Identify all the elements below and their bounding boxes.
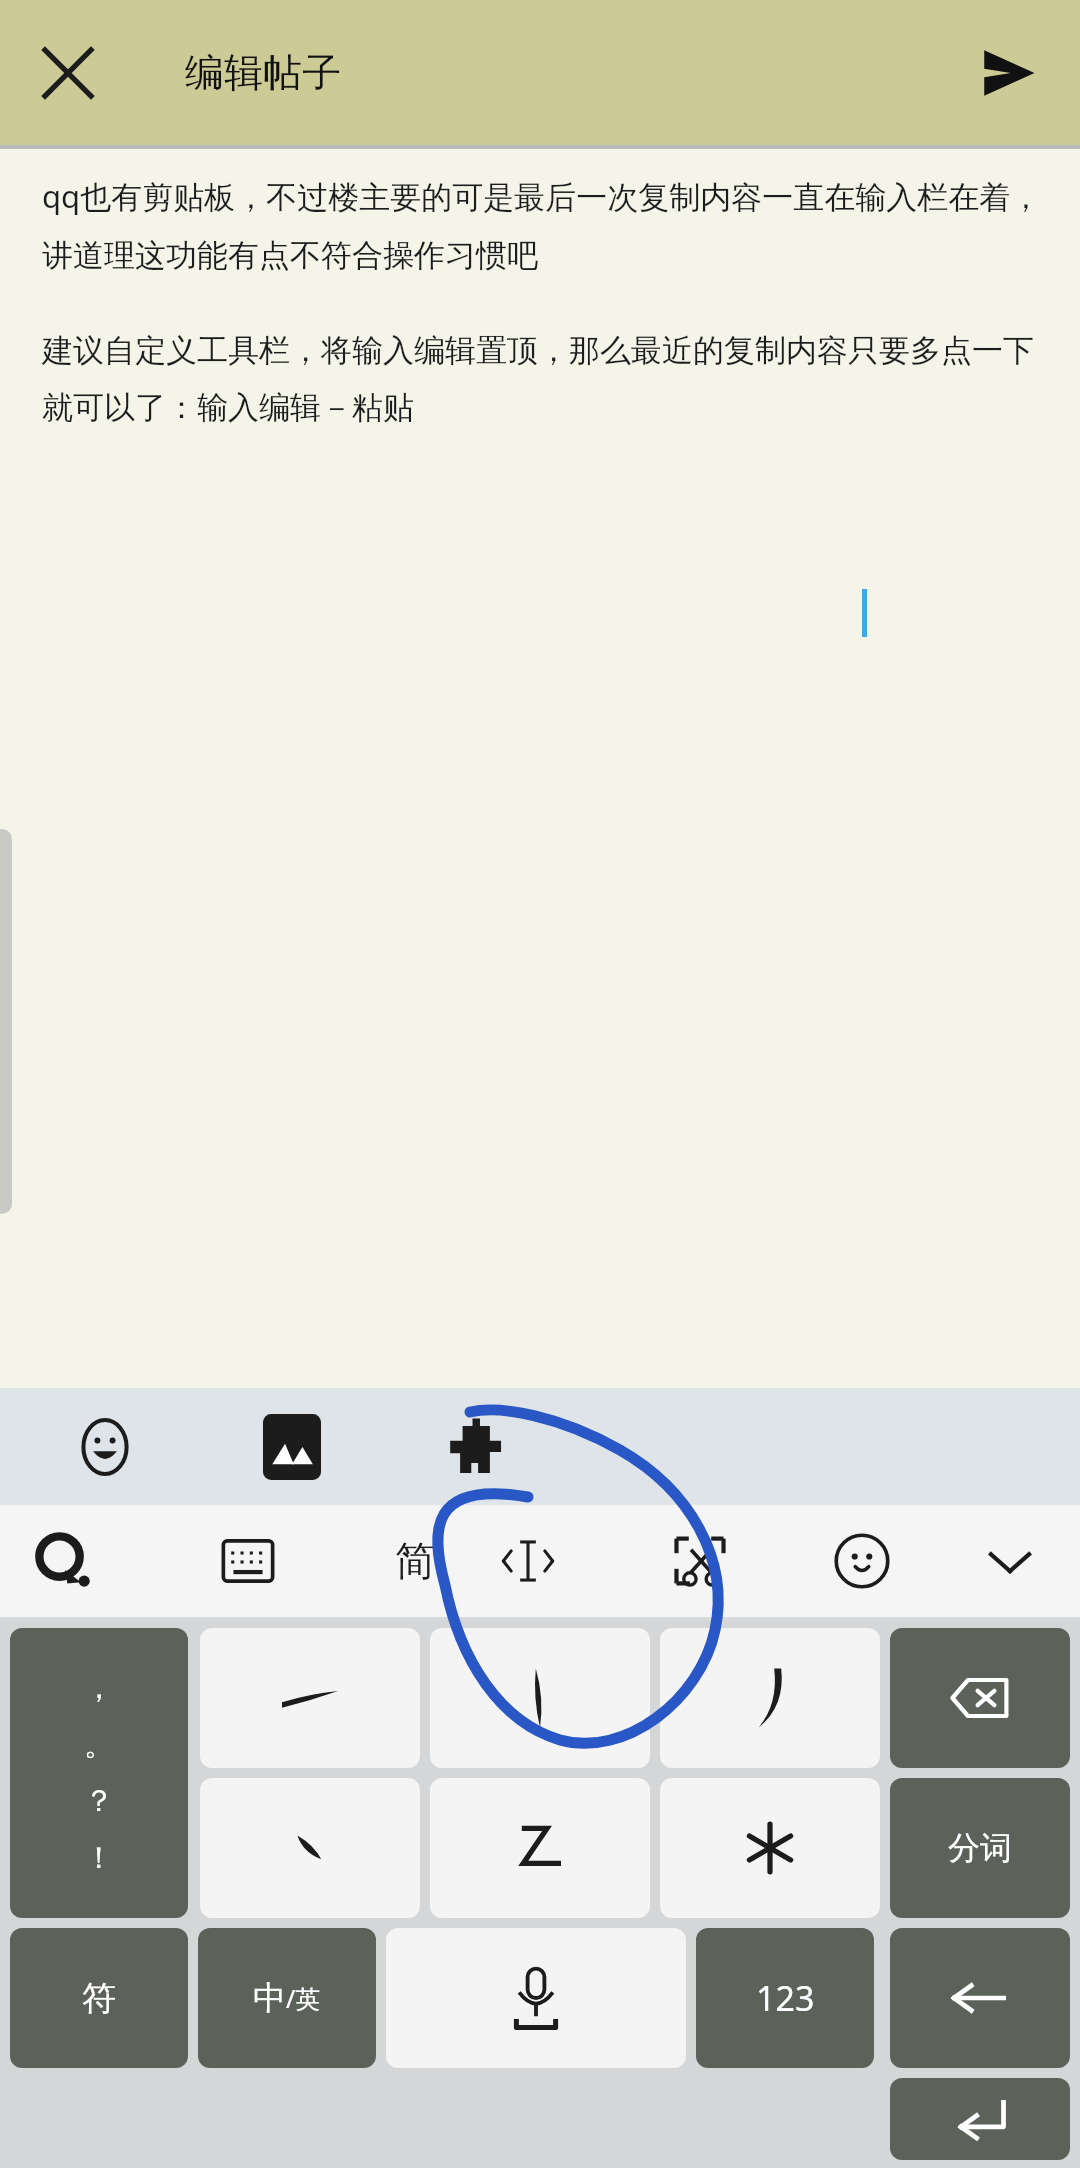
button[interactable]: Hide keyboard [955, 1505, 1065, 1617]
button[interactable]: 简 [360, 1505, 470, 1617]
button[interactable]: Emoji [55, 1388, 155, 1505]
button[interactable]: 分词 [890, 1778, 1070, 1918]
staticText: 符 [82, 1977, 116, 2020]
button[interactable]: 123 [696, 1928, 874, 2068]
button[interactable] [660, 1778, 880, 1918]
button[interactable] [430, 1628, 650, 1768]
staticText: ？ [84, 1782, 114, 1820]
button[interactable]: Left [890, 1928, 1070, 2068]
button[interactable] [200, 1628, 420, 1768]
button[interactable]: Voice input [386, 1928, 686, 2068]
button[interactable]: Move cursor [473, 1505, 583, 1617]
button[interactable]: Image [242, 1388, 342, 1505]
staticText: 简 [395, 1536, 435, 1586]
staticText: 分词 [948, 1828, 1012, 1868]
staticText: qq也有剪贴板，不过楼主要的可是最后一次复制内容一直在输入栏在着，讲道理这功能有… [42, 175, 1044, 275]
button[interactable]: 中 [198, 1928, 376, 2068]
staticText: ！ [84, 1839, 114, 1877]
staticText: 中 [253, 1977, 286, 2019]
button[interactable]: Clipboard cut [645, 1505, 755, 1617]
staticText: 。 [84, 1726, 114, 1764]
button[interactable]: Backspace [890, 1628, 1070, 1768]
button[interactable]: Enter [890, 2078, 1070, 2160]
button[interactable]: Emoticons [807, 1505, 917, 1617]
button[interactable] [430, 1778, 650, 1918]
button[interactable]: ， [10, 1628, 188, 1918]
button[interactable]: QQ Pinyin [9, 1505, 119, 1617]
button[interactable]: Keyboard [193, 1505, 303, 1617]
staticText: 建议自定义工具栏，将输入编辑置顶，那么最近的复制内容只要多点一下就可以了：输入编… [42, 331, 1044, 427]
button[interactable]: 符 [10, 1928, 188, 2068]
button[interactable]: Send [956, 21, 1060, 125]
staticText: /英 [286, 1981, 321, 2015]
button[interactable] [200, 1778, 420, 1918]
staticText: 编辑帖子 [185, 48, 341, 97]
staticText: ， [84, 1669, 114, 1707]
button[interactable]: Close [18, 23, 118, 123]
staticText: 123 [756, 1975, 815, 2021]
button[interactable] [660, 1628, 880, 1768]
button[interactable]: Plugins [425, 1388, 525, 1505]
